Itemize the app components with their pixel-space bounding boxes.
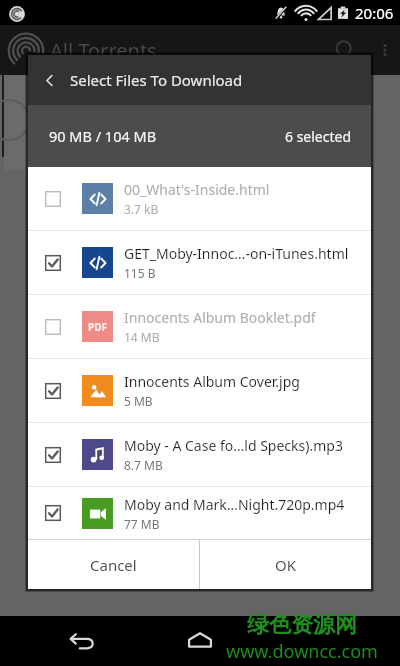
staticText: Cancel (90, 555, 137, 575)
button[interactable]: Innocents Album Cover.jpg (28, 359, 371, 422)
staticText: Moby - A Case fo…ld Specks).mp3 (124, 436, 343, 455)
button[interactable]: 00_What's-Inside.html (28, 167, 371, 230)
staticText: GET_Moby-Innoc…-on-iTunes.html (124, 244, 349, 263)
button[interactable]: Home (178, 619, 222, 663)
staticText: 77 MB (124, 516, 160, 532)
button[interactable]: Moby and Mark…Night.720p.mp4 (28, 487, 371, 539)
button[interactable]: GET_Moby-Innoc…-on-iTunes.html (28, 231, 371, 294)
staticText: 00_What's-Inside.html (124, 180, 270, 199)
button[interactable]: OK (200, 540, 371, 589)
staticText: PDF (88, 320, 108, 334)
staticText: Select Files To Download (70, 70, 243, 90)
staticText: Moby and Mark…Night.720p.mp4 (124, 495, 345, 514)
button[interactable]: Cancel (28, 540, 199, 589)
staticText: 8.7 MB (124, 457, 163, 473)
staticText: www.downcc.com (226, 639, 378, 664)
button[interactable]: Moby - A Case fo…ld Specks).mp3 (28, 423, 371, 486)
staticText: 3.7 kB (124, 201, 159, 217)
staticText: 115 B (124, 265, 156, 281)
button[interactable]: Back (61, 621, 101, 661)
staticText: 90 MB / 104 MB (49, 126, 157, 146)
staticText: Innocents Album Booklet.pdf (124, 308, 316, 327)
button[interactable]: PDF (28, 295, 371, 358)
staticText: Innocents Album Cover.jpg (124, 372, 300, 391)
staticText: 20:06 (355, 3, 394, 23)
staticText: 绿色资源网 (247, 611, 357, 639)
staticText: All Torrents (50, 37, 157, 64)
button[interactable]: Back (34, 65, 64, 95)
staticText: 6 selected (285, 127, 352, 146)
staticText: 14 MB (124, 329, 160, 345)
staticText: OK (275, 555, 297, 575)
staticText: 5 MB (124, 393, 153, 409)
